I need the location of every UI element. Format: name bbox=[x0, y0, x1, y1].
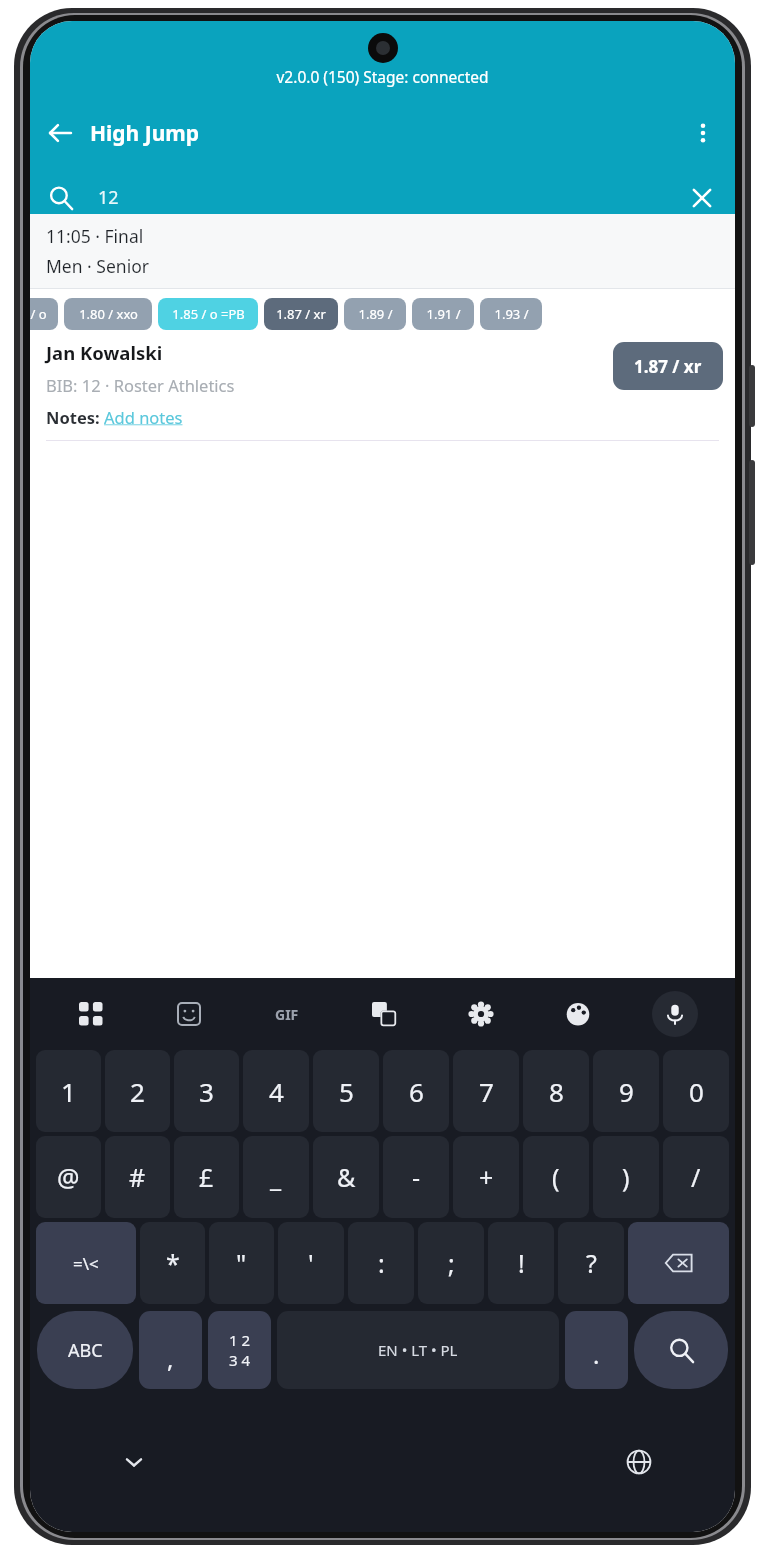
button[interactable]: Search bbox=[40, 181, 82, 214]
button[interactable]: + bbox=[453, 1136, 519, 1218]
button[interactable]: ' bbox=[278, 1222, 344, 1304]
button[interactable]: Backspace bbox=[628, 1222, 729, 1304]
staticText: Men · Senior bbox=[46, 254, 149, 278]
staticText: 9 bbox=[619, 1074, 634, 1109]
staticText: 0 bbox=[689, 1074, 704, 1109]
button[interactable]: # bbox=[105, 1136, 170, 1218]
button[interactable]: Clear search bbox=[681, 181, 723, 214]
button[interactable]: 8 bbox=[523, 1050, 589, 1132]
button[interactable]: ! bbox=[488, 1222, 554, 1304]
staticText: " bbox=[236, 1246, 247, 1280]
button[interactable]: Search bbox=[634, 1311, 728, 1389]
button[interactable]: 5 bbox=[313, 1050, 379, 1132]
staticText: & bbox=[337, 1160, 356, 1194]
button[interactable]: Hide keyboard bbox=[114, 1442, 154, 1482]
staticText: ; bbox=[448, 1246, 455, 1280]
staticText: Add notes bbox=[104, 406, 183, 428]
staticText: ? bbox=[586, 1246, 597, 1280]
button[interactable]: ABC bbox=[37, 1311, 133, 1389]
staticText: / bbox=[691, 1160, 701, 1194]
button[interactable]: - bbox=[383, 1136, 449, 1218]
staticText: ! bbox=[518, 1246, 525, 1280]
button[interactable]: 1.89 / bbox=[344, 298, 406, 330]
button[interactable]: / o bbox=[30, 298, 58, 330]
button[interactable]: " bbox=[209, 1222, 274, 1304]
button[interactable]: * bbox=[140, 1222, 205, 1304]
button[interactable]: & bbox=[313, 1136, 379, 1218]
staticText: 1.89 / bbox=[358, 305, 393, 323]
button[interactable]: 1.80 / xxo bbox=[64, 298, 152, 330]
button[interactable]: : bbox=[348, 1222, 414, 1304]
button[interactable]: Back bbox=[38, 111, 82, 155]
button[interactable]: 7 bbox=[453, 1050, 519, 1132]
staticText: £ bbox=[199, 1160, 214, 1194]
button[interactable]: 2 bbox=[105, 1050, 170, 1132]
staticText: 4 bbox=[269, 1074, 284, 1109]
button[interactable]: 1.91 / bbox=[412, 298, 474, 330]
button[interactable]: . bbox=[565, 1311, 628, 1389]
staticText: ' bbox=[308, 1246, 314, 1280]
staticText: 11:05 · Final bbox=[46, 224, 144, 248]
staticText: 1 bbox=[61, 1074, 76, 1109]
button[interactable]: 0 bbox=[663, 1050, 729, 1132]
button[interactable]: / o bbox=[30, 289, 735, 441]
button[interactable]: EN • LT • PL bbox=[277, 1311, 559, 1389]
button[interactable]: 3 bbox=[174, 1050, 239, 1132]
staticText: 5 bbox=[339, 1074, 354, 1109]
staticText: ) bbox=[622, 1160, 630, 1194]
staticText: EN • LT • PL bbox=[378, 1340, 458, 1360]
staticText: BIB: 12 · Roster Athletics bbox=[46, 374, 235, 396]
button[interactable]: =\< bbox=[36, 1222, 136, 1304]
staticText: 1.85 / o =PB bbox=[172, 305, 245, 323]
button[interactable]: @ bbox=[36, 1136, 101, 1218]
staticText: : bbox=[378, 1246, 385, 1280]
button[interactable]: 1.85 / o =PB bbox=[158, 298, 258, 330]
button[interactable]: £ bbox=[174, 1136, 239, 1218]
button[interactable]: , bbox=[139, 1311, 202, 1389]
button[interactable]: Translate bbox=[335, 978, 432, 1050]
button[interactable]: ( bbox=[523, 1136, 589, 1218]
button[interactable]: Change language bbox=[619, 1442, 659, 1482]
staticText: =\< bbox=[73, 1252, 99, 1275]
button[interactable]: 1.87 / xr bbox=[613, 342, 723, 390]
button[interactable]: 4 bbox=[243, 1050, 309, 1132]
button[interactable]: Apps bbox=[42, 978, 140, 1050]
button[interactable]: ? bbox=[558, 1222, 624, 1304]
staticText: * bbox=[166, 1246, 180, 1280]
button[interactable]: 1.93 / bbox=[480, 298, 542, 330]
button[interactable]: Add notes bbox=[104, 406, 183, 428]
staticText: 1.93 / bbox=[494, 305, 529, 323]
staticText: ( bbox=[552, 1160, 560, 1194]
staticText: v2.0.0 (150) Stage: connected bbox=[30, 66, 735, 87]
button[interactable]: 1.87 / xr bbox=[264, 298, 338, 330]
button[interactable]: _ bbox=[243, 1136, 309, 1218]
staticText: 2 bbox=[130, 1074, 145, 1109]
button[interactable]: 9 bbox=[593, 1050, 659, 1132]
button[interactable]: ) bbox=[593, 1136, 659, 1218]
button[interactable]: Settings bbox=[432, 978, 529, 1050]
button[interactable]: / bbox=[663, 1136, 729, 1218]
staticText: 12 bbox=[98, 185, 119, 210]
staticText: 3 4 bbox=[229, 1350, 251, 1370]
button[interactable]: Voice input bbox=[652, 991, 698, 1037]
button[interactable]: 11:05 · Final bbox=[30, 214, 735, 288]
staticText: High Jump bbox=[90, 119, 200, 148]
staticText: GIF bbox=[275, 1005, 299, 1024]
staticText: 7 bbox=[479, 1074, 494, 1109]
button[interactable]: Themes bbox=[529, 978, 626, 1050]
button[interactable]: More options bbox=[681, 111, 725, 155]
staticText: . bbox=[593, 1338, 600, 1371]
button[interactable]: GIF bbox=[238, 978, 335, 1050]
staticText: 1.87 / xr bbox=[276, 305, 326, 323]
button[interactable]: ; bbox=[418, 1222, 484, 1304]
staticText: / o bbox=[30, 305, 47, 323]
button[interactable]: Stickers bbox=[140, 978, 238, 1050]
staticText: , bbox=[167, 1342, 174, 1375]
staticText: @ bbox=[57, 1160, 80, 1194]
button[interactable]: Numbers bbox=[208, 1311, 271, 1389]
button[interactable]: 1 bbox=[36, 1050, 101, 1132]
staticText: 8 bbox=[549, 1074, 564, 1109]
staticText: 1.91 / bbox=[426, 305, 461, 323]
button[interactable]: 6 bbox=[383, 1050, 449, 1132]
staticText: ABC bbox=[68, 1338, 103, 1363]
